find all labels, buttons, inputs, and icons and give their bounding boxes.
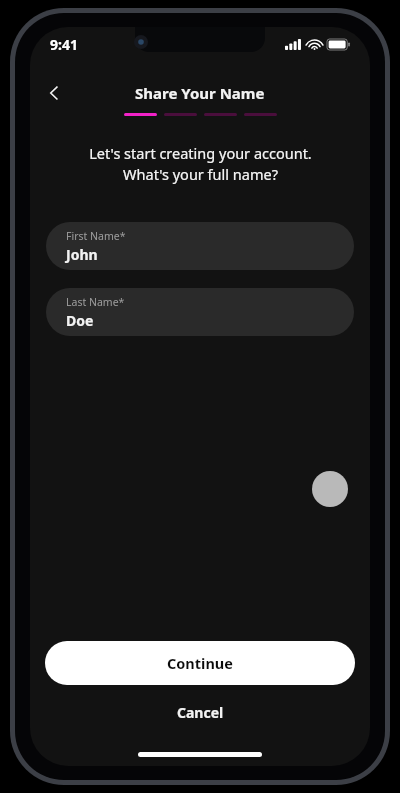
button[interactable]: Assistant [312, 471, 348, 507]
staticText: Cancel [177, 703, 224, 722]
staticText: Let's start creating your account. What'… [89, 143, 312, 185]
button[interactable]: Last Name* [46, 288, 354, 336]
staticText: John [66, 245, 98, 264]
button[interactable]: Continue [45, 641, 355, 685]
button[interactable]: Back [36, 75, 72, 111]
button[interactable]: First Name* [46, 222, 354, 270]
button[interactable]: Cancel [30, 695, 370, 729]
staticText: First Name* [66, 229, 126, 243]
staticText: Share Your Name [135, 83, 265, 103]
staticText: Continue [167, 653, 233, 673]
staticText: Last Name* [66, 295, 125, 309]
staticText: 9:41 [50, 35, 78, 54]
staticText: Doe [66, 311, 94, 330]
